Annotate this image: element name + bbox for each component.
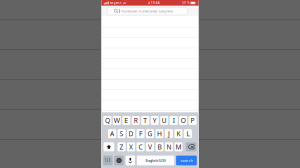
staticText: Название и описание закупки: [120, 8, 172, 14]
button[interactable]: U: [160, 116, 168, 125]
staticText: L: [186, 129, 189, 138]
staticText: K: [176, 129, 180, 138]
staticText: P: [191, 116, 195, 125]
staticText: 19:44: [150, 1, 160, 5]
button[interactable]: X: [127, 142, 135, 151]
staticText: W: [114, 116, 120, 125]
staticText: J: [168, 129, 170, 138]
staticText: MegaFon: [109, 1, 122, 5]
button[interactable]: Y: [151, 116, 159, 125]
button[interactable]: Название и описание закупки: [107, 7, 187, 15]
button[interactable]: E: [122, 116, 130, 125]
button[interactable]: search: [176, 156, 197, 165]
staticText: B: [157, 142, 161, 151]
button[interactable]: N: [165, 142, 173, 151]
button[interactable]: P: [189, 116, 197, 125]
staticText: LTE: [122, 1, 126, 5]
button[interactable]: J: [165, 129, 173, 138]
button[interactable]: S: [118, 129, 126, 138]
staticText: E: [124, 116, 128, 125]
staticText: N: [166, 142, 171, 151]
staticText: Q: [105, 116, 110, 125]
staticText: T: [143, 116, 147, 125]
button[interactable]: Z: [118, 142, 126, 151]
staticText: H: [157, 129, 162, 138]
staticText: Z: [120, 142, 124, 151]
button[interactable]: Next keyboard: [114, 156, 124, 165]
button[interactable]: L: [184, 129, 192, 138]
button[interactable]: Q: [103, 116, 111, 125]
staticText: search: [180, 158, 192, 163]
button[interactable]: F: [136, 129, 145, 138]
staticText: 123: [105, 159, 111, 162]
button[interactable]: K: [174, 129, 182, 138]
button[interactable]: O: [179, 116, 187, 125]
button[interactable]: G: [146, 129, 154, 138]
button[interactable]: M: [174, 142, 182, 151]
staticText: R: [134, 116, 138, 125]
staticText: S: [120, 129, 124, 138]
staticText: X: [129, 142, 133, 151]
button[interactable]: A: [108, 129, 116, 138]
staticText: Y: [153, 116, 157, 125]
staticText: I: [173, 116, 175, 125]
button[interactable]: 123: [103, 156, 112, 165]
staticText: O: [181, 116, 186, 125]
button[interactable]: I: [170, 116, 178, 125]
button[interactable]: T: [141, 116, 149, 125]
staticText: 68 %: [182, 1, 189, 5]
button[interactable]: V: [146, 142, 154, 151]
button[interactable]: H: [155, 129, 163, 138]
button[interactable]: English (US): [137, 156, 174, 165]
staticText: F: [139, 129, 142, 138]
button[interactable]: W: [113, 116, 121, 125]
button[interactable]: Delete: [186, 142, 196, 151]
button[interactable]: C: [136, 142, 145, 151]
button[interactable]: D: [127, 129, 135, 138]
staticText: A: [110, 129, 114, 138]
staticText: D: [129, 129, 134, 138]
staticText: V: [148, 142, 152, 151]
staticText: U: [162, 116, 167, 125]
button[interactable]: Dictation: [126, 156, 135, 165]
staticText: G: [147, 129, 152, 138]
staticText: M: [175, 142, 181, 151]
staticText: C: [138, 142, 142, 151]
button[interactable]: R: [132, 116, 140, 125]
button[interactable]: B: [155, 142, 163, 151]
staticText: English (US): [146, 158, 166, 163]
button[interactable]: Shift: [104, 142, 114, 151]
